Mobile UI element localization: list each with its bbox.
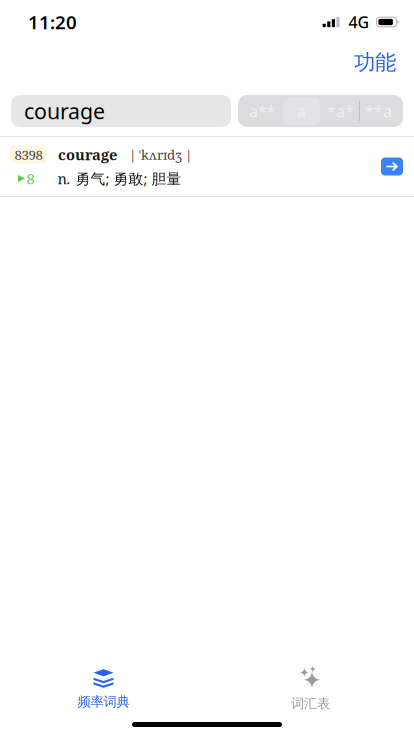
staticText: courage [24,97,105,125]
staticText: 4G [349,11,370,33]
button[interactable]: 频率词典 [0,664,207,713]
button[interactable]: courage [11,95,231,127]
staticText: **a [365,100,392,122]
button[interactable]: *a* [322,97,359,125]
staticText: 勇气; 勇敢; 胆量 [75,169,181,188]
staticText: 词汇表 [291,695,330,712]
staticText: 8 [26,168,34,188]
button[interactable]: **a [360,97,397,125]
staticText: | ˈkʌrɪdʒ | [129,145,192,164]
staticText: n. [57,168,70,188]
button[interactable]: 功能 [336,41,414,84]
button[interactable]: 8398 [0,137,414,196]
staticText: a [297,100,306,122]
staticText: 11:20 [28,10,77,34]
button[interactable]: a** [244,97,281,125]
staticText: 频率词典 [77,693,129,710]
staticText: courage [58,144,117,164]
staticText: *a* [327,100,354,122]
staticText: a** [249,100,276,122]
staticText: 8398 [14,145,42,164]
staticText: 功能 [354,49,396,76]
button[interactable]: 词汇表 [207,664,414,713]
